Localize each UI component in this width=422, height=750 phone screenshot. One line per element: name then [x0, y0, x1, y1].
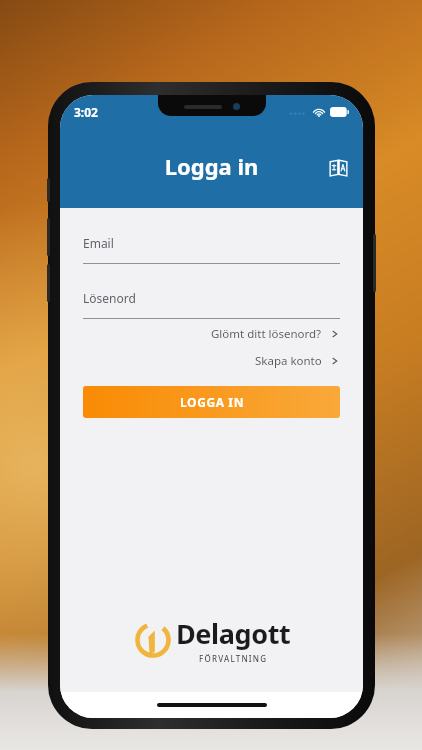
staticText: 3:02 [74, 104, 98, 120]
staticText: Glömt ditt lösenord? [211, 326, 322, 342]
staticText: LOGGA IN [180, 394, 244, 410]
button[interactable]: Skapa konto [83, 353, 340, 369]
staticText: Skapa konto [255, 353, 322, 369]
staticText: Delagott [176, 615, 291, 652]
staticText: Email [83, 235, 114, 251]
staticText: FÖRVALTNING [199, 653, 268, 664]
button[interactable]: Glömt ditt lösenord? [83, 326, 340, 342]
button[interactable]: LOGGA IN [83, 386, 340, 418]
staticText: Logga in [60, 151, 363, 181]
button[interactable]: Translate [319, 148, 357, 186]
staticText: Lösenord [83, 290, 136, 306]
button[interactable]: Email [83, 235, 340, 264]
button[interactable]: Lösenord [83, 290, 340, 319]
